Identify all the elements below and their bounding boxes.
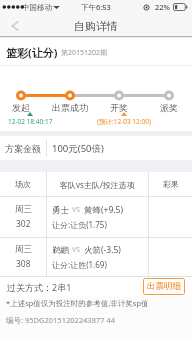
staticText: VS [72,245,81,255]
staticText: 100元(50倍) [52,142,104,155]
staticText: (预计:12-03 12:00) [97,117,151,126]
button[interactable]: 出票明细 [143,278,185,295]
staticText: 出票成功 [52,102,88,113]
staticText: 场次 [15,179,31,189]
staticText: 开奖 [110,102,128,113]
staticText: VS [72,205,81,215]
staticText: 派奖 [160,102,178,113]
staticText: 308 [16,258,31,270]
staticText: 鹈鹕 [52,245,69,256]
staticText: 让分:让负(1.75) [52,219,107,230]
staticText: 12-02 18:40:17 [8,117,53,126]
staticText: 下午6:53 [81,2,111,12]
staticText: 出票明细 [147,281,181,292]
staticText: 勇士 [52,205,69,216]
staticText: 黄蜂(+9.5) [84,204,123,216]
staticText: 周三 [15,244,32,255]
staticText: 302 [16,218,31,230]
staticText: 编号: 95DG20151202243877 44 [6,315,116,325]
staticText: 火箭(-3.5) [84,244,121,256]
staticText: 周三 [15,204,32,215]
staticText: *上述sp值仅为投注时的参考值,非计奖sp值 [6,298,149,308]
staticText: 过关方式：2串1 [7,281,72,293]
staticText: 篮彩(让分) [6,45,58,60]
staticText: 自购详情 [74,19,118,33]
staticText: 客队vs主队/投注选项 [60,179,135,190]
staticText: 方案金额 [5,143,41,154]
button[interactable]: Back [4,15,26,37]
staticText: 发起 [12,102,30,113]
staticText: 让分:让胜(1.69) [52,259,107,270]
staticText: 中国移动 [22,3,52,12]
staticText: 22% [155,2,170,12]
staticText: 第20151202期 [61,48,108,58]
staticText: 彩果 [163,179,179,189]
